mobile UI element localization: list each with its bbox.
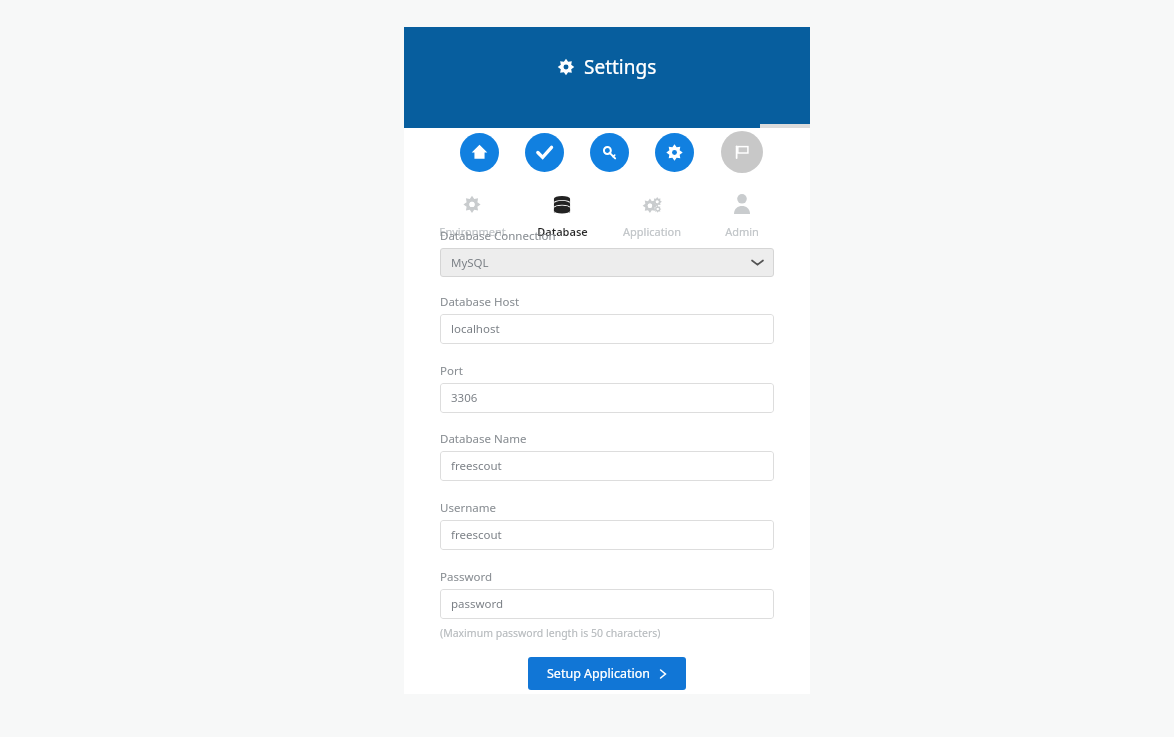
staticText: password xyxy=(451,596,504,612)
staticText: Port xyxy=(440,363,463,379)
button[interactable]: MySQL xyxy=(440,248,774,277)
staticText: localhost xyxy=(451,321,500,337)
staticText: Database xyxy=(537,224,588,239)
button[interactable]: Home step xyxy=(460,133,499,172)
staticText: 3306 xyxy=(451,390,478,406)
staticText: Environment xyxy=(439,224,506,239)
staticText: Username xyxy=(440,500,496,516)
button[interactable]: Environment xyxy=(427,192,517,241)
staticText: Settings xyxy=(584,54,657,80)
button[interactable]: freescout xyxy=(440,520,774,550)
staticText: Database Host xyxy=(440,294,520,310)
button[interactable]: Settings step xyxy=(655,133,694,172)
staticText: Admin xyxy=(725,224,759,239)
button[interactable]: Permissions step xyxy=(590,133,629,172)
button[interactable]: freescout xyxy=(440,451,774,481)
button[interactable]: Application xyxy=(607,192,697,241)
button[interactable]: Database xyxy=(517,192,607,241)
staticText: Password xyxy=(440,569,493,585)
button[interactable]: Requirements step xyxy=(525,133,564,172)
button[interactable]: 3306 xyxy=(440,383,774,413)
staticText: freescout xyxy=(451,458,502,474)
staticText: freescout xyxy=(451,527,502,543)
staticText: Database Connection xyxy=(440,228,556,244)
button[interactable]: password xyxy=(440,589,774,619)
staticText: Application xyxy=(623,224,681,239)
button[interactable]: Admin xyxy=(697,192,787,241)
button[interactable]: localhost xyxy=(440,314,774,344)
staticText: Setup Application xyxy=(547,665,650,682)
staticText: MySQL xyxy=(451,255,489,271)
staticText: Database Name xyxy=(440,431,527,447)
staticText: (Maximum password length is 50 character… xyxy=(440,626,661,640)
button[interactable]: Setup Application xyxy=(528,657,686,690)
button[interactable]: Finish step xyxy=(721,131,763,173)
